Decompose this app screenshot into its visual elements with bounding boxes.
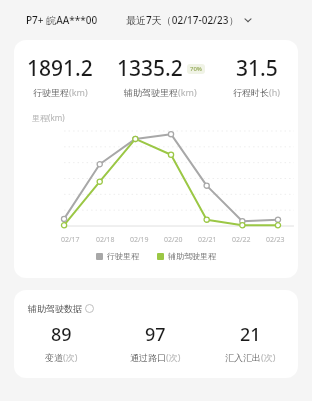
button[interactable]: 行驶里程 [96,251,139,261]
staticText: 21 [240,322,261,347]
button[interactable]: 辅助驾驶里程 [157,251,216,261]
button[interactable]: 89 [14,322,108,363]
staticText: 02/20 [164,235,183,245]
button[interactable]: 21 [203,322,298,363]
staticText: 汇入汇出 [225,352,261,363]
staticText: 89 [51,322,72,347]
staticText: (次) [261,351,276,363]
staticText: (次) [63,351,78,363]
staticText: 行驶里程 [107,251,139,261]
staticText: 02/23 [266,235,285,245]
staticText: 里程(km) [32,112,65,123]
staticText: 02/21 [198,235,217,245]
staticText: (h) [269,86,280,98]
button[interactable]: 1335.2 [106,54,215,98]
staticText: 行驶里程 [33,87,69,98]
staticText: 31.5 [236,54,278,83]
button[interactable]: 1891.2 [14,54,106,98]
staticText: 通过路口 [130,352,166,363]
staticText: 02/18 [96,235,115,245]
staticText: 行程时长 [233,87,269,98]
staticText: (km) [178,86,197,98]
staticText: 02/19 [130,235,149,245]
button[interactable]: 最近7天（02/17-02/23） [124,9,255,31]
staticText: 辅助驾驶里程 [124,87,178,98]
staticText: 辅助驾驶数据 [28,303,82,314]
staticText: (km) [69,86,88,98]
button[interactable]: 31.5 [215,54,298,98]
staticText: 最近7天（02/17-02/23） [126,13,239,27]
staticText: 02/22 [232,235,251,245]
staticText: 02/17 [61,235,80,245]
staticText: 变道 [45,352,63,363]
button[interactable]: 97 [108,322,203,363]
staticText: (次) [166,351,181,363]
staticText: 辅助驾驶里程 [168,251,216,261]
staticText: 70% [190,65,202,73]
staticText: 1891.2 [27,54,93,83]
button[interactable]: Help [85,304,94,313]
staticText: P7+ 皖AA***00 [26,13,98,27]
staticText: 1335.2 [117,54,183,83]
staticText: 97 [145,322,166,347]
